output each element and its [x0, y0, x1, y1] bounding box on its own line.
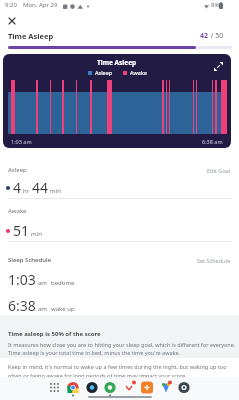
- staticText: Awake: [130, 69, 147, 76]
- staticText: Asleep: [8, 166, 27, 174]
- staticText: 6:38: [8, 296, 36, 315]
- button[interactable]: Time Asleep: [3, 54, 231, 148]
- button[interactable]: [5, 14, 19, 28]
- staticText: 51: [13, 221, 30, 240]
- staticText: 4: [13, 178, 22, 197]
- staticText: min: [31, 230, 42, 238]
- button[interactable]: 51: [6, 221, 42, 240]
- staticText: 6:38 am: [202, 138, 223, 145]
- staticText: Time asleep is your total time in bed, m…: [8, 349, 181, 356]
- button[interactable]: 6:38: [8, 296, 75, 315]
- staticText: often or being awake for long periods of…: [8, 372, 187, 379]
- staticText: Time Asleep: [8, 31, 54, 41]
- staticText: 1:03 am: [11, 138, 32, 145]
- staticText: min: [50, 187, 61, 195]
- staticText: 1:03: [8, 270, 36, 289]
- staticText: am: [38, 305, 47, 313]
- staticText: am: [38, 279, 47, 287]
- staticText: Awake: [8, 207, 27, 215]
- staticText: Mon, Apr 29: [23, 1, 58, 9]
- staticText: Sleep Schedule: [8, 256, 52, 264]
- staticText: wake up: [51, 305, 75, 313]
- button[interactable]: 1:03: [8, 270, 75, 289]
- button[interactable]: Edit Goal: [190, 164, 234, 176]
- staticText: Asleep: [95, 69, 113, 76]
- staticText: Keep in mind, it's normal to wake up a f…: [8, 363, 227, 370]
- staticText: Set Schedule: [197, 257, 231, 264]
- staticText: Time Asleep: [97, 58, 137, 67]
- staticText: hr: [23, 187, 30, 195]
- staticText: Edit Goal: [207, 167, 231, 174]
- staticText: 42: [200, 31, 209, 41]
- staticText: / 50: [209, 31, 224, 41]
- button[interactable]: 4: [6, 178, 61, 197]
- staticText: 9:20: [5, 1, 17, 9]
- staticText: It measures how close you are to hitting…: [8, 341, 236, 348]
- staticText: 44: [32, 178, 49, 197]
- staticText: bedtime: [51, 279, 75, 287]
- button[interactable]: Set Schedule: [185, 254, 234, 266]
- staticText: 8%: [211, 1, 220, 9]
- staticText: Time asleep is 50% of the score: [8, 330, 101, 338]
